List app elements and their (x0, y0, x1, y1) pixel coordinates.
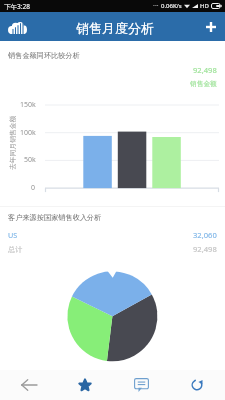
button[interactable]: Back (0, 370, 57, 400)
staticText: 92,498 (193, 244, 217, 254)
staticText: 去年同月销售金额 (8, 115, 17, 170)
staticText: HD (200, 2, 209, 10)
button[interactable]: Refresh (169, 370, 225, 400)
staticText: 92,498 (193, 65, 217, 75)
staticText: US (8, 230, 18, 240)
staticText: ··· (153, 1, 159, 11)
staticText: 总计 (8, 245, 23, 254)
staticText: 100k (20, 128, 36, 138)
staticText: 32,060 (193, 230, 217, 240)
staticText: 50k (24, 155, 36, 165)
button[interactable]: Favorite (57, 370, 113, 400)
staticText: 150k (20, 100, 36, 110)
staticText: 下午3:28 (4, 2, 30, 11)
button[interactable]: Add (197, 13, 225, 41)
staticText: 销售月度分析 (76, 20, 154, 36)
button[interactable]: Comments (113, 370, 169, 400)
staticText: 0.06K/s (161, 2, 182, 10)
staticText: 销售金额同环比较分析 (8, 51, 80, 60)
button[interactable]: App logo (2, 12, 32, 41)
staticText: 客户来源按国家销售收入分析 (8, 213, 102, 222)
staticText: 销售金额 (190, 80, 217, 88)
staticText: 0 (31, 183, 36, 193)
